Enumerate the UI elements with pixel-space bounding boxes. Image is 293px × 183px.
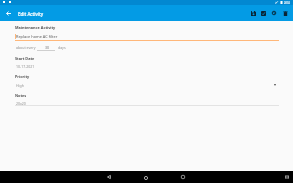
staticText: 2:04 [284, 1, 290, 5]
button[interactable]: Home [141, 173, 151, 183]
staticText: days [58, 45, 66, 50]
button[interactable]: Back [104, 172, 114, 182]
staticText: Notes [15, 93, 27, 98]
button[interactable]: Recent apps [178, 172, 188, 182]
button[interactable]: Select priority [270, 80, 280, 90]
button[interactable]: History [269, 8, 279, 18]
staticText: 20x20 [16, 101, 26, 106]
staticText: Maintenance Activity [15, 25, 56, 30]
button[interactable]: Navigate up [3, 8, 13, 18]
button[interactable]: Mark complete [258, 8, 268, 18]
staticText: Priority [15, 74, 30, 79]
staticText: Edit Activity [18, 11, 44, 17]
button[interactable]: Keyboard [283, 173, 290, 180]
staticText: Replace home AC filter [16, 34, 58, 39]
button[interactable]: Delete [280, 8, 290, 18]
staticText: Start Date [15, 56, 35, 61]
staticText: High [16, 83, 24, 88]
staticText: 10-17-2021 [16, 64, 35, 69]
button[interactable]: Save [248, 8, 258, 18]
staticText: 30 [45, 45, 50, 50]
staticText: about every [16, 45, 36, 50]
